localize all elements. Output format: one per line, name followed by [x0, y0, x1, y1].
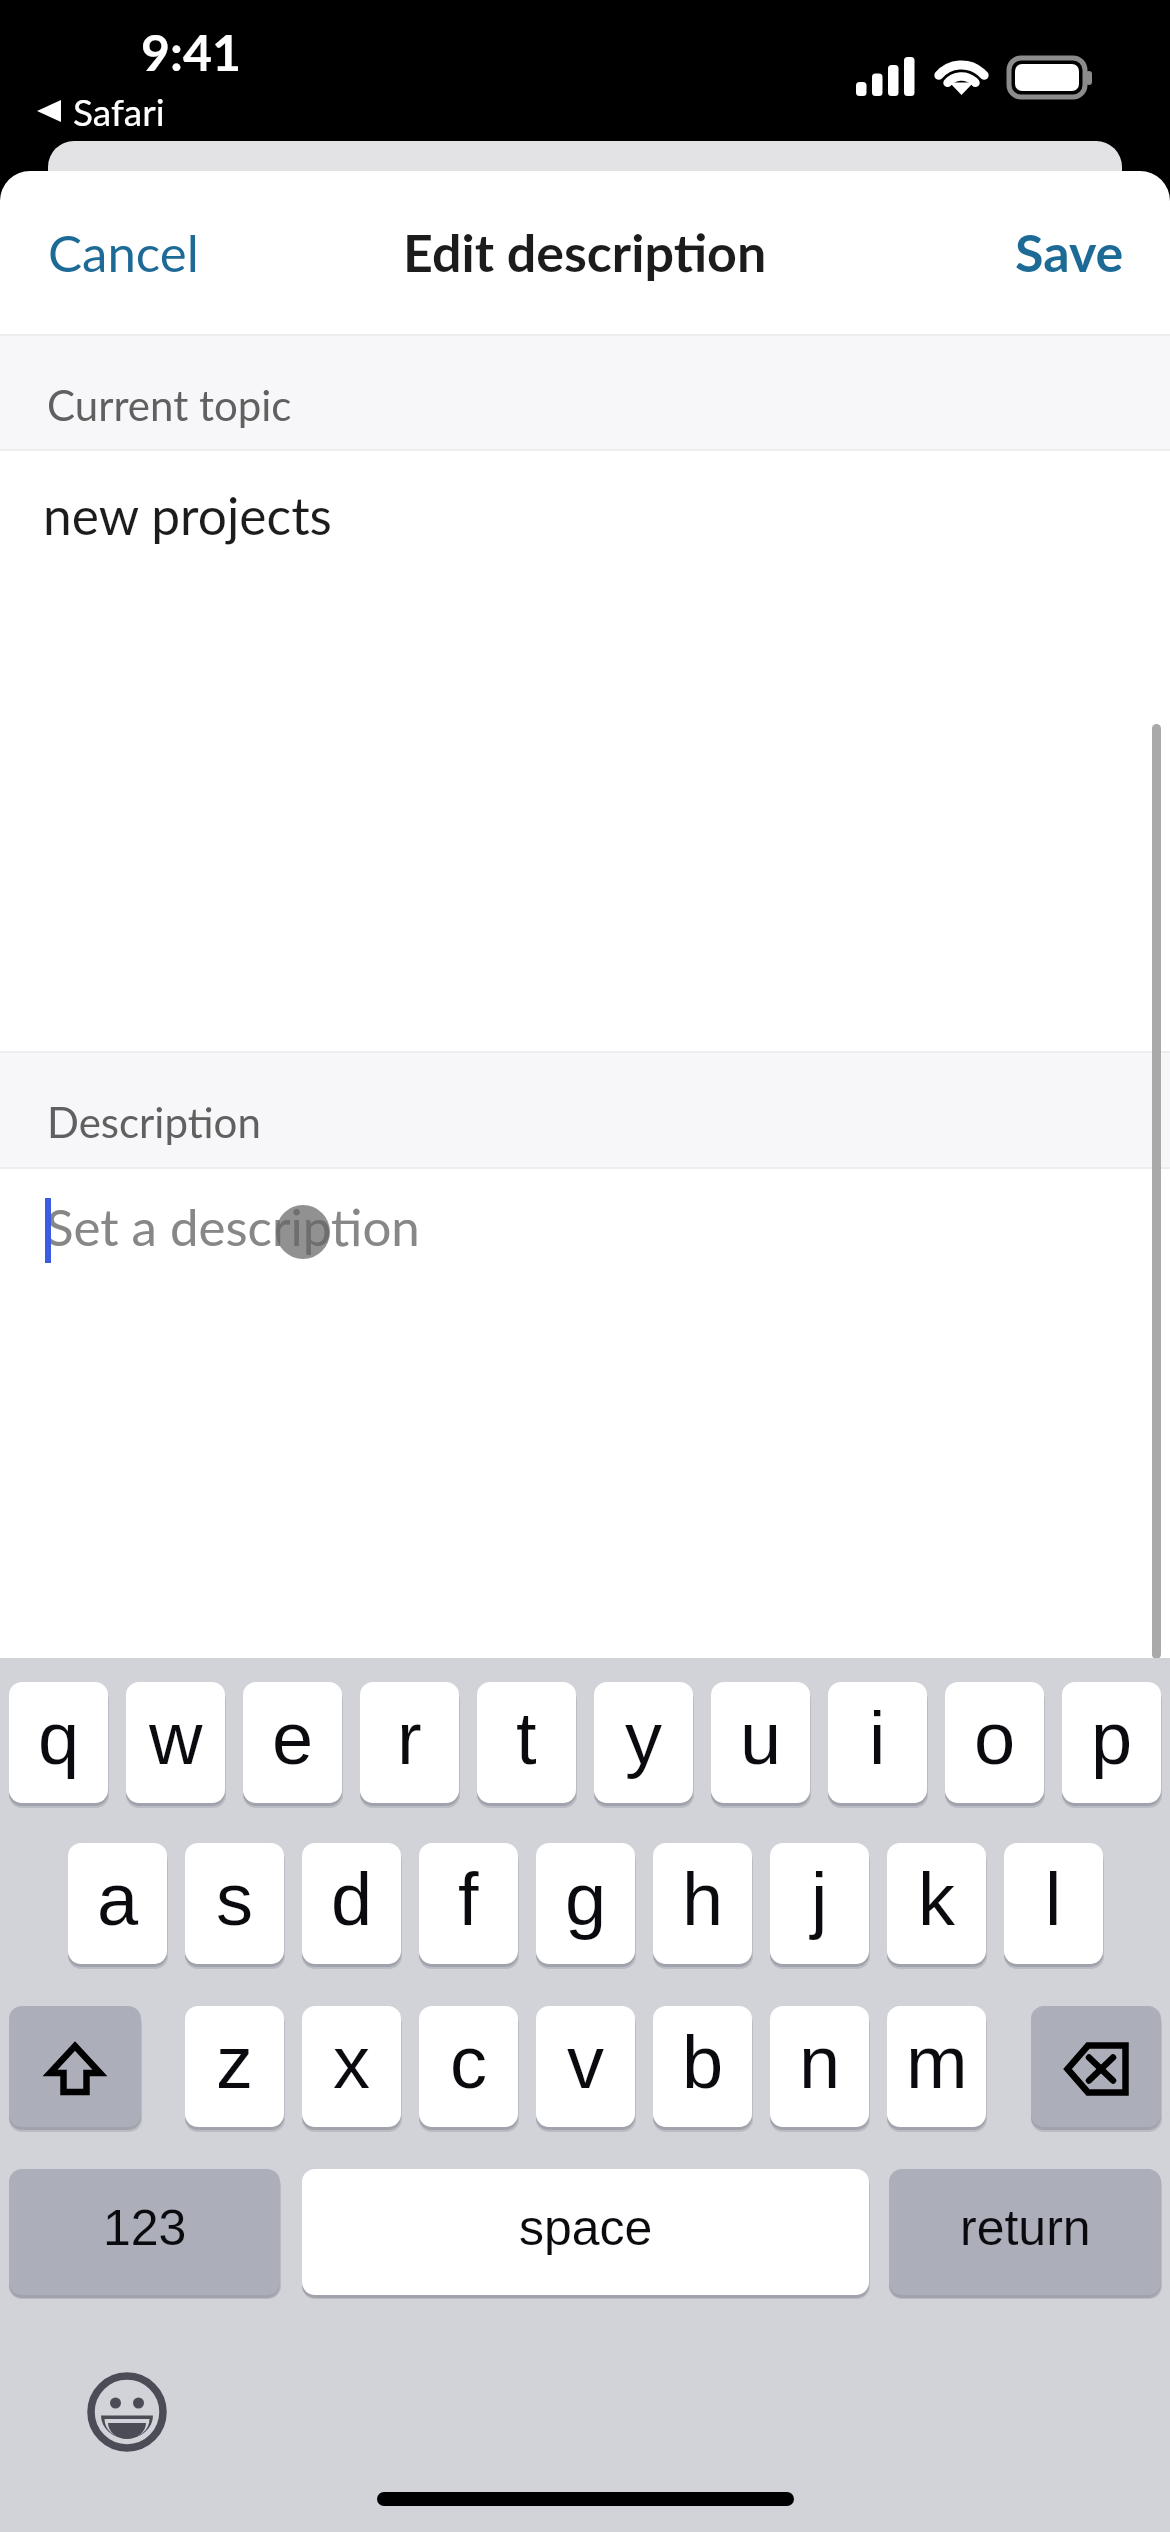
button[interactable]: Save — [975, 191, 1170, 313]
staticText: Description — [47, 1097, 261, 1147]
staticText: y — [625, 1697, 662, 1780]
button[interactable]: x — [302, 2006, 401, 2127]
staticText: 9:41 — [141, 22, 241, 82]
button[interactable]: w — [126, 1682, 225, 1803]
button[interactable]: z — [185, 2006, 284, 2127]
staticText: new projects — [43, 484, 332, 546]
button[interactable]: o — [945, 1682, 1044, 1803]
staticText: e — [272, 1697, 314, 1780]
staticText: 123 — [103, 2200, 187, 2256]
button[interactable]: t — [477, 1682, 576, 1803]
button[interactable]: s — [185, 1843, 284, 1964]
staticText: s — [216, 1858, 253, 1941]
button[interactable]: i — [828, 1682, 927, 1803]
button[interactable]: j — [770, 1843, 869, 1964]
staticText: g — [565, 1858, 607, 1941]
staticText: x — [333, 2021, 370, 2104]
staticText: space — [519, 2200, 653, 2256]
button[interactable]: k — [887, 1843, 986, 1964]
staticText: n — [799, 2021, 841, 2104]
staticText: v — [567, 2021, 604, 2104]
button[interactable]: space — [302, 2169, 869, 2295]
button[interactable]: v — [536, 2006, 635, 2127]
staticText: Cancel — [48, 222, 199, 283]
staticText: Edit description — [403, 221, 767, 283]
button[interactable]: a — [68, 1843, 167, 1964]
staticText: t — [516, 1697, 537, 1780]
button[interactable]: 123 — [9, 2169, 280, 2295]
button[interactable]: g — [536, 1843, 635, 1964]
staticText: m — [906, 2021, 968, 2104]
staticText: c — [450, 2021, 487, 2104]
staticText: k — [918, 1858, 955, 1941]
button[interactable]: f — [419, 1843, 518, 1964]
staticText: Current topic — [47, 380, 292, 430]
button[interactable]: Set a description — [0, 1168, 1170, 1658]
staticText: r — [397, 1697, 422, 1780]
button[interactable]: Shift — [9, 2006, 141, 2127]
staticText: Set a description — [46, 1196, 420, 1257]
button[interactable]: Backspace — [1031, 2006, 1161, 2127]
button[interactable]: h — [653, 1843, 752, 1964]
staticText: o — [974, 1697, 1016, 1780]
staticText: a — [97, 1858, 139, 1941]
button[interactable]: Emoji keyboard — [79, 2364, 175, 2460]
staticText: Save — [1015, 221, 1124, 283]
button[interactable]: c — [419, 2006, 518, 2127]
staticText: l — [1045, 1858, 1062, 1941]
button[interactable]: Cancel — [0, 192, 239, 313]
button[interactable]: y — [594, 1682, 693, 1803]
button[interactable]: p — [1062, 1682, 1161, 1803]
button[interactable]: n — [770, 2006, 869, 2127]
button[interactable]: e — [243, 1682, 342, 1803]
button[interactable]: d — [302, 1843, 401, 1964]
staticText: u — [740, 1697, 782, 1780]
button[interactable]: m — [887, 2006, 986, 2127]
staticText: Safari — [73, 89, 165, 133]
staticText: q — [38, 1697, 80, 1780]
staticText: b — [682, 2021, 724, 2104]
button[interactable]: return — [889, 2169, 1161, 2295]
button[interactable]: q — [9, 1682, 108, 1803]
staticText: p — [1091, 1697, 1133, 1780]
button[interactable]: b — [653, 2006, 752, 2127]
button[interactable]: r — [360, 1682, 459, 1803]
button[interactable]: l — [1004, 1843, 1103, 1964]
staticText: h — [682, 1858, 724, 1941]
staticText: f — [458, 1858, 479, 1941]
button[interactable]: Safari — [37, 89, 165, 133]
button[interactable]: new projects — [0, 451, 1170, 1051]
staticText: w — [149, 1697, 203, 1780]
button[interactable]: u — [711, 1682, 810, 1803]
staticText: j — [811, 1858, 828, 1941]
staticText: z — [216, 2021, 253, 2104]
staticText: return — [960, 2200, 1091, 2256]
staticText: i — [869, 1697, 886, 1780]
staticText: d — [331, 1858, 373, 1941]
